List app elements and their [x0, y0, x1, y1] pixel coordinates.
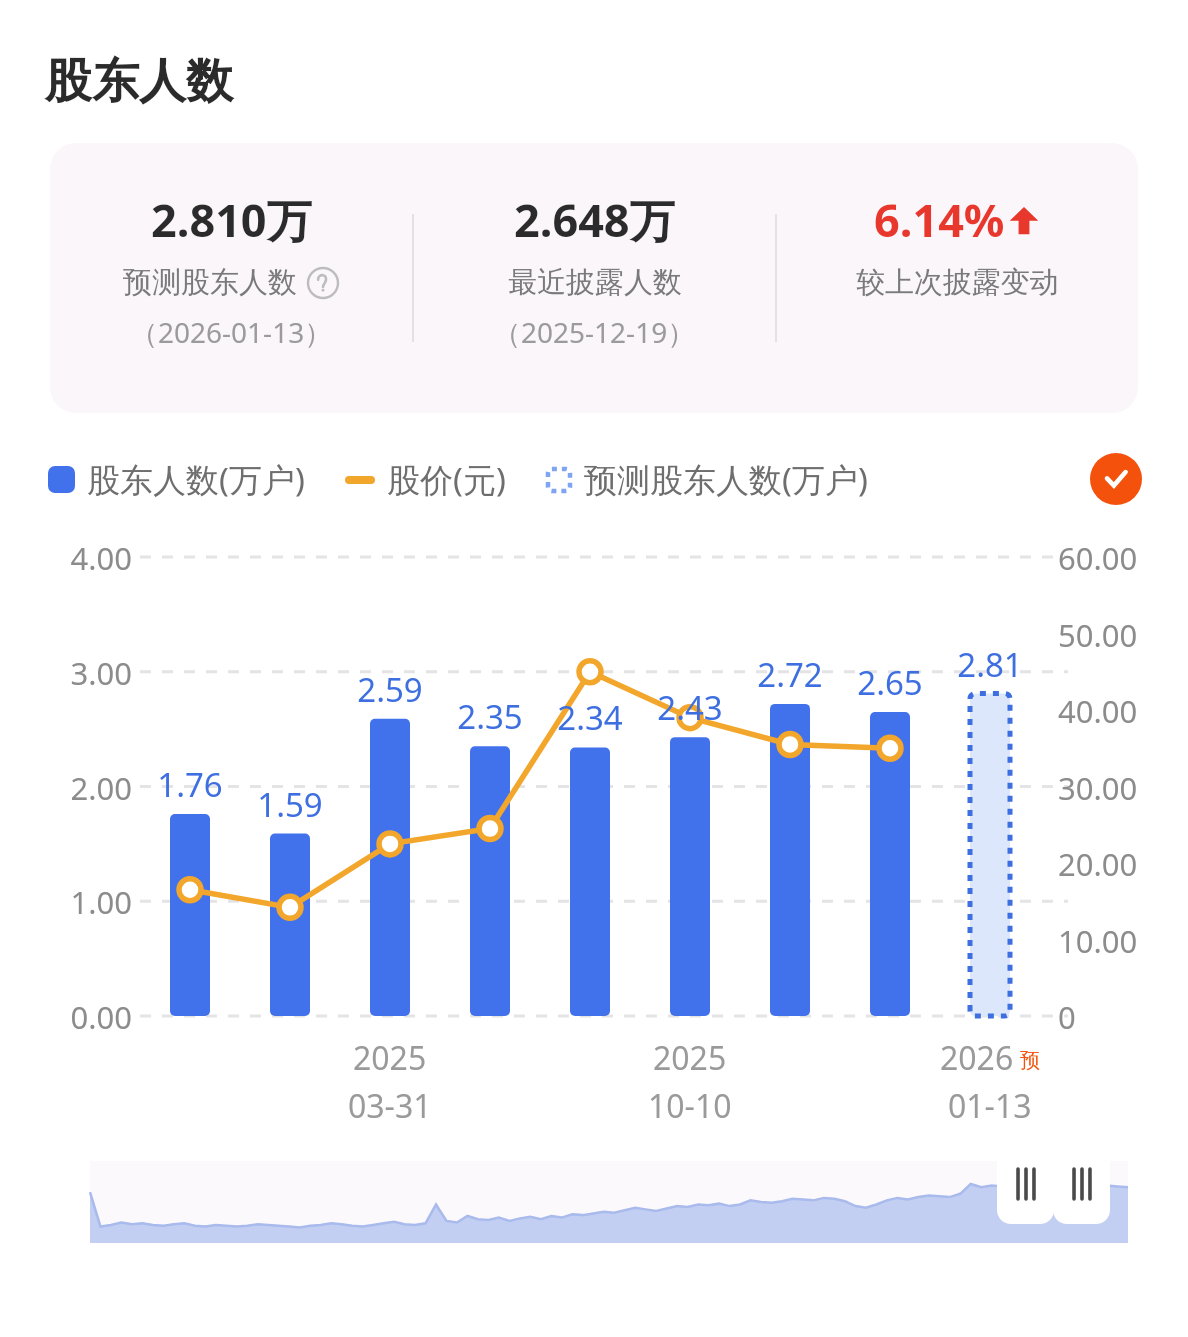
- staticText: 4.00: [22, 537, 132, 579]
- staticText: 2.59: [330, 667, 450, 712]
- staticText: 2.81: [930, 642, 1050, 687]
- staticText: 较上次披露变动: [856, 264, 1059, 301]
- staticText: 2.34: [530, 695, 650, 740]
- staticText: 2.648万: [514, 189, 675, 250]
- staticText: （2026-01-13）: [130, 313, 333, 351]
- staticText: 50.00: [1058, 614, 1138, 656]
- staticText: 2.35: [430, 694, 550, 739]
- staticText: 2.65: [830, 660, 950, 705]
- staticText: 2.810万: [151, 189, 312, 250]
- button[interactable]: 帮助说明: [306, 266, 340, 300]
- staticText: 股价(元): [387, 457, 506, 502]
- button[interactable]: 股东人数(万户): [48, 457, 305, 502]
- staticText: 0.00: [22, 996, 132, 1038]
- button[interactable]: 预测股东人数(万户): [546, 457, 868, 502]
- staticText: 01-13: [948, 1084, 1032, 1128]
- button[interactable]: 2.810万: [50, 143, 1138, 413]
- staticText: （2025-12-19）: [493, 313, 696, 351]
- staticText: 3.00: [22, 652, 132, 694]
- staticText: 1.00: [22, 881, 132, 923]
- staticText: 2025: [353, 1036, 427, 1080]
- staticText: 6.14%: [874, 189, 1005, 250]
- staticText: 预测股东人数(万户): [584, 457, 868, 502]
- staticText: 最近披露人数: [508, 264, 682, 301]
- staticText: 股东人数: [45, 52, 233, 111]
- staticText: 60.00: [1058, 537, 1138, 579]
- staticText: 03-31: [348, 1084, 432, 1128]
- button[interactable]: 左侧选择手柄: [0, 1135, 1188, 1285]
- staticText: 2026: [940, 1036, 1014, 1080]
- button[interactable]: 股价(元): [345, 457, 506, 502]
- staticText: 40.00: [1058, 690, 1138, 732]
- staticText: 1.76: [130, 762, 250, 807]
- staticText: 股东人数(万户): [87, 457, 305, 502]
- staticText: 1.59: [230, 782, 350, 827]
- staticText: 2.72: [730, 652, 850, 697]
- staticText: 2025: [653, 1036, 727, 1080]
- staticText: 30.00: [1058, 767, 1138, 809]
- staticText: 10.00: [1058, 920, 1138, 962]
- staticText: 2.43: [630, 685, 750, 730]
- staticText: 20.00: [1058, 843, 1138, 885]
- button[interactable]: 4.00: [0, 531, 1188, 1121]
- button[interactable]: 左侧选择手柄: [997, 1144, 1054, 1224]
- button[interactable]: 右侧选择手柄: [1053, 1144, 1110, 1224]
- staticText: 10-10: [648, 1084, 732, 1128]
- button[interactable]: 确认: [1090, 453, 1142, 505]
- staticText: 0: [1058, 996, 1076, 1038]
- staticText: 2.00: [22, 767, 132, 809]
- staticText: 预测股东人数: [123, 264, 297, 301]
- staticText: 预: [1020, 1048, 1040, 1073]
